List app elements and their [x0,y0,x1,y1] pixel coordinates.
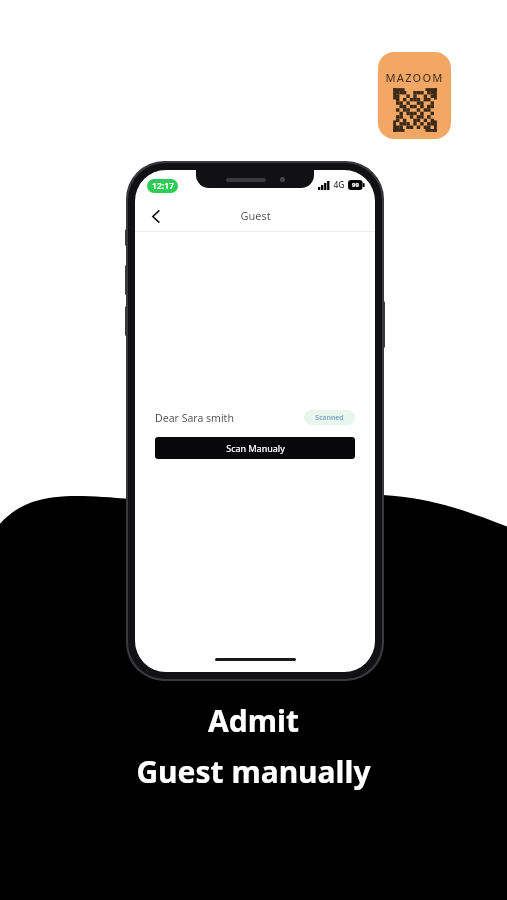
button[interactable]: Scanned [304,410,355,425]
staticText: MAZOOM [385,70,444,85]
button[interactable]: Scan Manualy [155,437,355,459]
staticText: 12:17 [152,180,174,192]
button[interactable]: MAZOOM app icon [378,52,451,139]
staticText: Scanned [315,413,344,423]
staticText: Guest manually [136,751,371,792]
staticText: Dear Sara smith [155,411,234,425]
staticText: 99 [352,181,359,189]
staticText: Scan Manualy [226,442,285,454]
staticText: Guest [240,208,271,223]
staticText: Admit [208,700,299,741]
staticText: 4G [333,179,345,191]
button[interactable]: Back [141,201,171,231]
